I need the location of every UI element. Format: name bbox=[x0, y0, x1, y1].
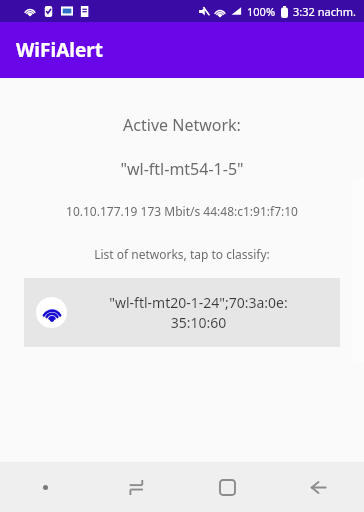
staticText: 10.10.177.19 173 Mbit/s 44:48:c1:91:f7:1… bbox=[66, 203, 298, 219]
button[interactable]: Home bbox=[182, 462, 273, 512]
staticText: WiFiAlert bbox=[16, 37, 104, 63]
staticText: "wl-ftl-mt54-1-5" bbox=[120, 158, 244, 180]
button[interactable]: Back bbox=[273, 462, 364, 512]
button[interactable]: Recents bbox=[91, 462, 182, 512]
staticText: 100% bbox=[247, 4, 276, 19]
staticText: "wl-ftl-mt20-1-24";70:3a:0e: 35:10:60 bbox=[109, 293, 288, 332]
staticText: 3:32 nachm. bbox=[293, 4, 356, 19]
staticText: List of networks, tap to classify: bbox=[94, 246, 270, 262]
button[interactable]: Indicator bbox=[0, 462, 91, 512]
button[interactable]: "wl-ftl-mt20-1-24";70:3a:0e: 35:10:60 bbox=[24, 278, 340, 347]
staticText: Active Network: bbox=[123, 114, 241, 136]
